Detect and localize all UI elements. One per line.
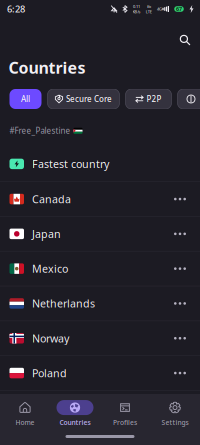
staticText: Canada [32, 192, 71, 206]
staticText: LTE [146, 9, 152, 14]
staticText: Profiles [113, 418, 137, 427]
button[interactable]: Profiles [100, 400, 150, 427]
staticText: Countries [8, 57, 85, 78]
staticText: Fastest country [32, 157, 109, 171]
button[interactable]: Search [173, 18, 197, 52]
staticText: Norway [32, 331, 69, 345]
button[interactable] [177, 89, 200, 109]
button[interactable]: Netherlands [0, 286, 200, 321]
staticText: P2P [146, 94, 161, 104]
staticText: 0.11 [133, 4, 140, 9]
staticText: 4G [157, 6, 162, 12]
staticText: Vo [147, 4, 151, 9]
staticText: 67 [176, 5, 182, 13]
staticText: Countries [59, 418, 90, 427]
button[interactable]: Mexico [0, 252, 200, 286]
button[interactable]: Fastest country [0, 146, 200, 182]
button[interactable]: Home [0, 400, 50, 427]
staticText: Mexico [32, 262, 68, 276]
button[interactable]: All [9, 89, 41, 109]
button[interactable]: Japan [0, 217, 200, 252]
staticText: #Free_Palestine [9, 125, 70, 136]
button[interactable]: Norway [0, 321, 200, 356]
staticText: Settings [161, 418, 188, 427]
staticText: KB/s [132, 9, 140, 14]
button[interactable]: P2P [125, 89, 171, 109]
staticText: Japan [32, 227, 61, 241]
staticText: Netherlands [32, 296, 95, 311]
button[interactable]: Poland [0, 356, 200, 391]
button[interactable]: Secure Core [47, 89, 119, 109]
staticText: Secure Core [66, 94, 112, 104]
button[interactable]: Canada [0, 182, 200, 217]
staticText: All [21, 94, 30, 104]
button[interactable]: Settings [150, 400, 200, 427]
button[interactable]: Countries [50, 400, 100, 427]
staticText: 6:28 [7, 3, 25, 15]
staticText: Poland [32, 366, 67, 380]
staticText: Home [15, 418, 34, 427]
